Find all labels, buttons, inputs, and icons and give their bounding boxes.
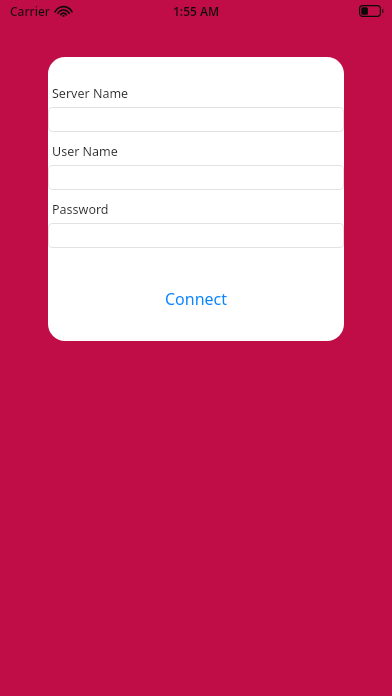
staticText: Carrier [10, 3, 50, 19]
button[interactable]: Server Name [48, 107, 344, 132]
staticText: User Name [52, 143, 118, 160]
staticText: Password [52, 201, 109, 218]
staticText: 1:55 AM [173, 3, 220, 19]
staticText: Server Name [52, 85, 129, 102]
button[interactable]: Connect [151, 282, 242, 316]
staticText: Connect [165, 288, 228, 310]
button[interactable]: User Name [48, 165, 344, 190]
button[interactable]: Password [48, 223, 344, 248]
